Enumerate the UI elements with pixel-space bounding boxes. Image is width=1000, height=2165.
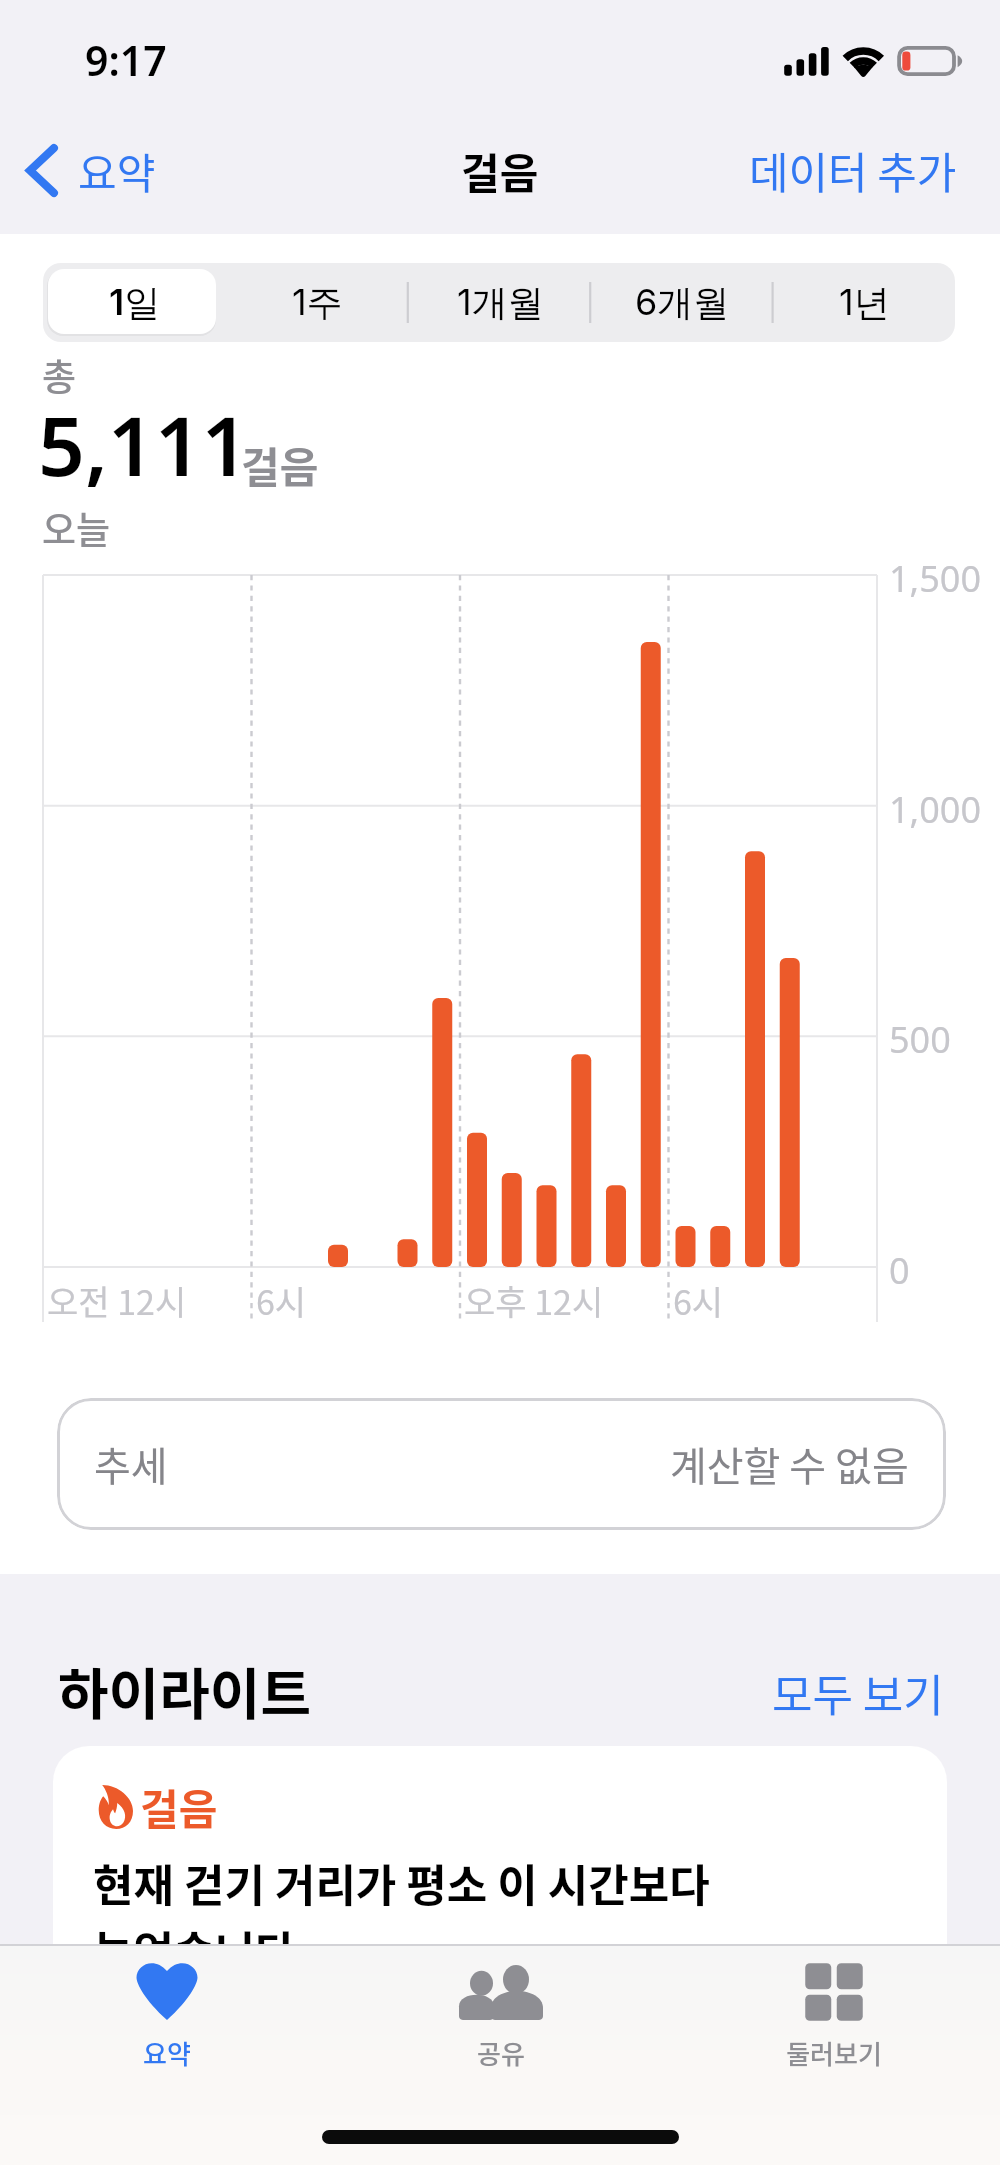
button[interactable]: Browse [667, 1960, 1000, 2072]
button[interactable]: 6개월 [591, 263, 773, 342]
button[interactable]: 1일 [43, 263, 226, 342]
staticText: 9:17 [85, 32, 167, 88]
staticText: 요약 [143, 2034, 191, 2072]
other: Summary [119, 1964, 215, 2020]
staticText: 1,500 [889, 554, 982, 603]
staticText: 현재 걷기 거리가 평소 이 시간보다 늘었습니다. [93, 1851, 710, 1981]
button[interactable]: Summary [0, 1960, 334, 2072]
staticText: 0 [889, 1246, 910, 1295]
staticText: 500 [889, 1015, 951, 1064]
staticText: 5,111 [38, 388, 249, 500]
button[interactable]: 모두 보기 [766, 1655, 950, 1731]
button[interactable]: 1년 [773, 263, 955, 342]
staticText: 1일 [109, 280, 161, 326]
staticText: 1개월 [457, 280, 544, 326]
staticText: 둘러보기 [786, 2034, 882, 2072]
button[interactable]: 요약 [0, 126, 170, 215]
staticText: 6시 [673, 1276, 724, 1325]
button[interactable]: 추세 [57, 1398, 946, 1530]
staticText: 오늘 [42, 501, 111, 555]
staticText: 요약 [78, 140, 156, 201]
button[interactable]: 걸음 [53, 1746, 947, 2006]
staticText: 총 [42, 348, 77, 402]
staticText: 오전 12시 [47, 1276, 187, 1325]
staticText: 1,000 [889, 785, 982, 834]
staticText: 하이라이트 [58, 1650, 312, 1730]
button[interactable]: Sharing [334, 1960, 667, 2072]
staticText: 걸음 [461, 140, 539, 201]
staticText: 모두 보기 [772, 1661, 944, 1725]
other: Sharing [453, 1964, 549, 2020]
button[interactable]: 1개월 [409, 263, 591, 342]
staticText: 1주 [292, 280, 343, 326]
staticText: 6시 [256, 1276, 307, 1325]
staticText: 오후 12시 [464, 1276, 604, 1325]
staticText: 6개월 [635, 280, 730, 326]
staticText: 데이터 추가 [749, 139, 957, 201]
staticText: 1년 [839, 280, 890, 326]
staticText: 걸음 [241, 434, 319, 495]
staticText: 공유 [477, 2034, 525, 2072]
other: Browse [786, 1964, 882, 2020]
button[interactable]: 데이터 추가 [727, 125, 1000, 215]
staticText: 추세 [94, 1435, 168, 1493]
button[interactable]: 1주 [226, 263, 409, 342]
staticText: 계산할 수 없음 [670, 1435, 909, 1493]
staticText: 걸음 [140, 1776, 218, 1837]
